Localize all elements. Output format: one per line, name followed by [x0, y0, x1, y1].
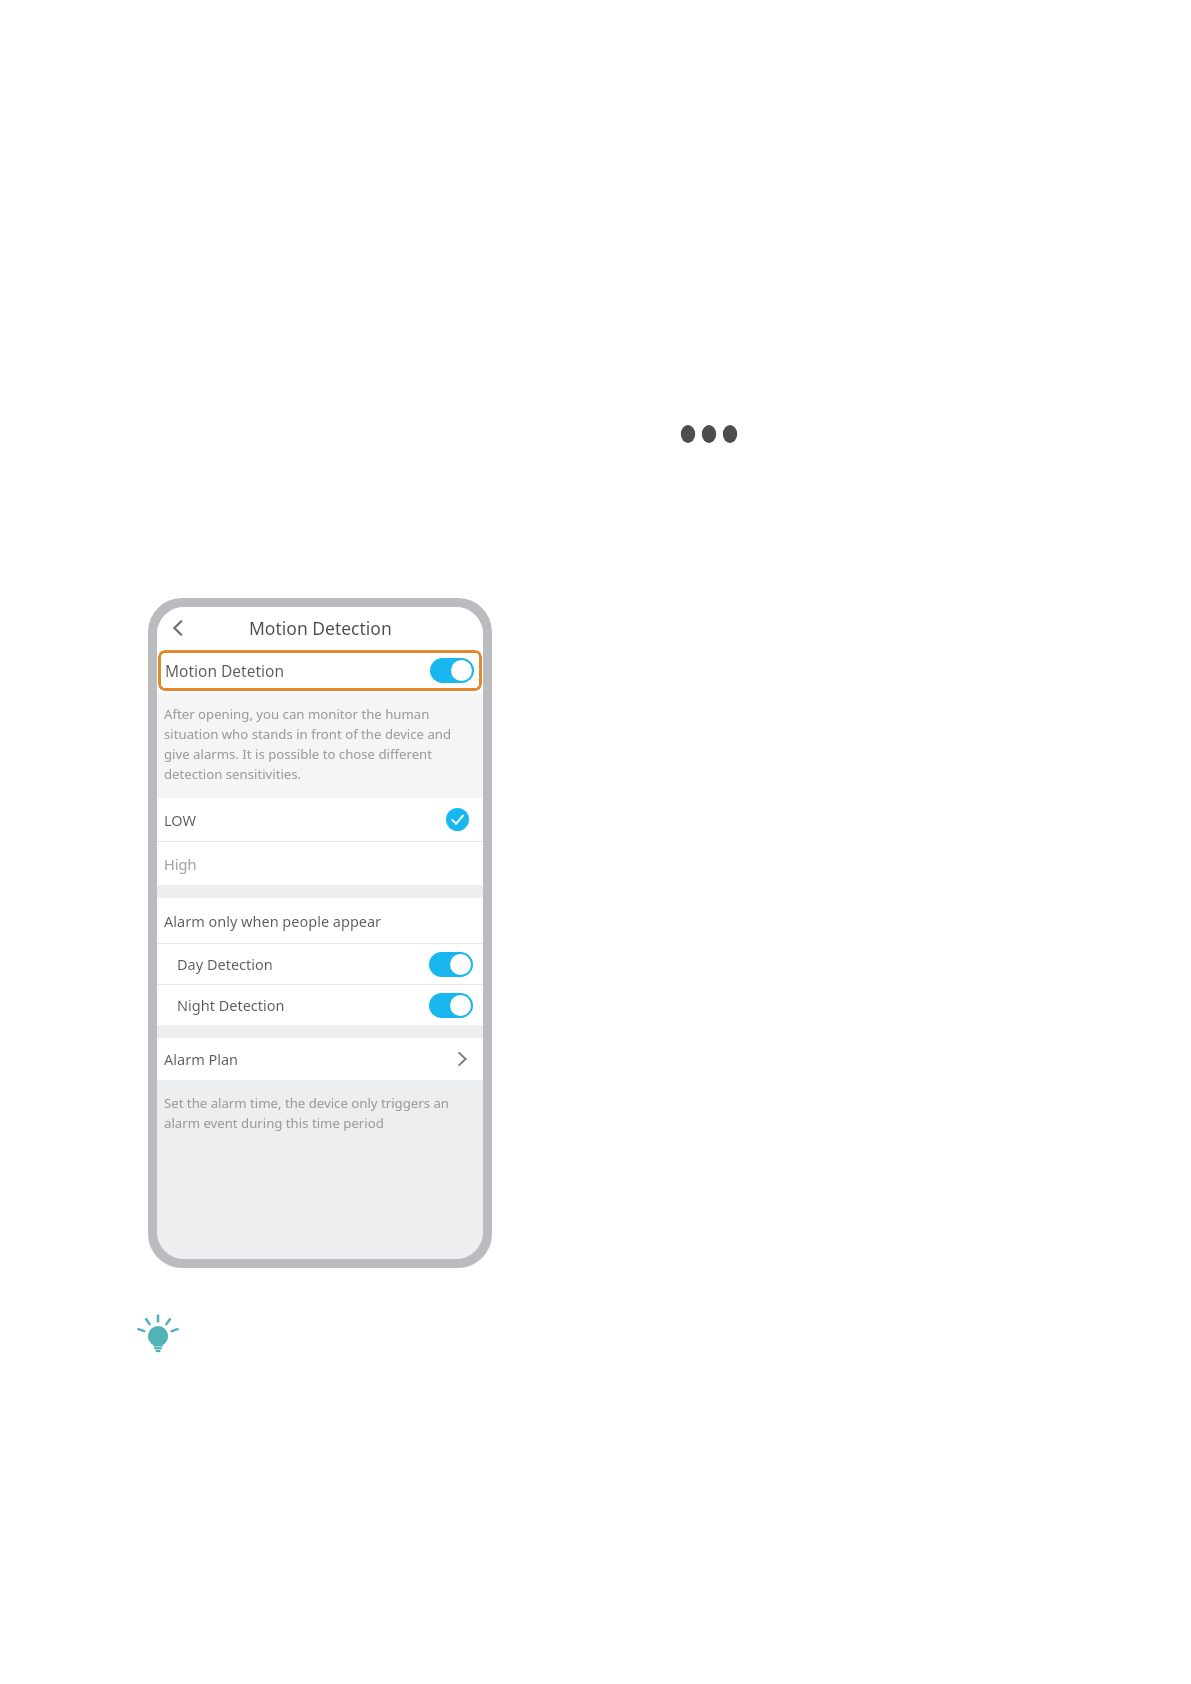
button[interactable]: Toggle	[429, 952, 473, 977]
staticText: Alarm Plan	[164, 1049, 239, 1069]
button[interactable]: Back	[161, 611, 195, 645]
staticText: After opening, you can monitor the human…	[164, 705, 475, 783]
button[interactable]: Alarm only when people appear	[157, 898, 483, 943]
button[interactable]: Motion Detetion	[157, 648, 483, 693]
staticText: LOW	[164, 810, 196, 830]
button[interactable]: Toggle	[429, 993, 473, 1018]
button[interactable]: Alarm Plan	[157, 1038, 483, 1080]
staticText: Motion Detection	[249, 616, 392, 640]
button[interactable]: Toggle	[430, 658, 474, 683]
button[interactable]: Night Detection	[157, 985, 483, 1025]
button[interactable]: Day Detection	[157, 944, 483, 984]
staticText: Day Detection	[177, 954, 273, 974]
staticText: High	[164, 854, 197, 874]
staticText: Night Detection	[177, 995, 285, 1015]
button[interactable]: LOW	[157, 798, 483, 841]
button[interactable]: High	[157, 842, 483, 885]
staticText: Set the alarm time, the device only trig…	[164, 1094, 477, 1132]
staticText: Motion Detetion	[165, 660, 284, 681]
staticText: Alarm only when people appear	[164, 911, 382, 931]
